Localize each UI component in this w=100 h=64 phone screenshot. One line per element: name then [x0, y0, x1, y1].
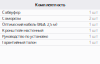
staticText: Гарантийный талон [2, 40, 36, 45]
staticText: Руководство по установке [2, 34, 48, 39]
staticText: 1 шт [89, 40, 98, 45]
staticText: Кронштейн настенный [2, 28, 43, 33]
staticText: 2 шт [89, 16, 98, 21]
staticText: Комплектность [35, 2, 65, 7]
staticText: 1 шт [89, 28, 98, 33]
staticText: Оптический кабель (IKEA 2,5 м) [2, 22, 57, 27]
staticText: Саморезы [2, 16, 21, 21]
staticText: Сабвуфер [2, 10, 20, 15]
staticText: 1 шт [89, 34, 98, 39]
staticText: 1 шт [89, 10, 98, 15]
staticText: 1 шт [89, 22, 98, 27]
